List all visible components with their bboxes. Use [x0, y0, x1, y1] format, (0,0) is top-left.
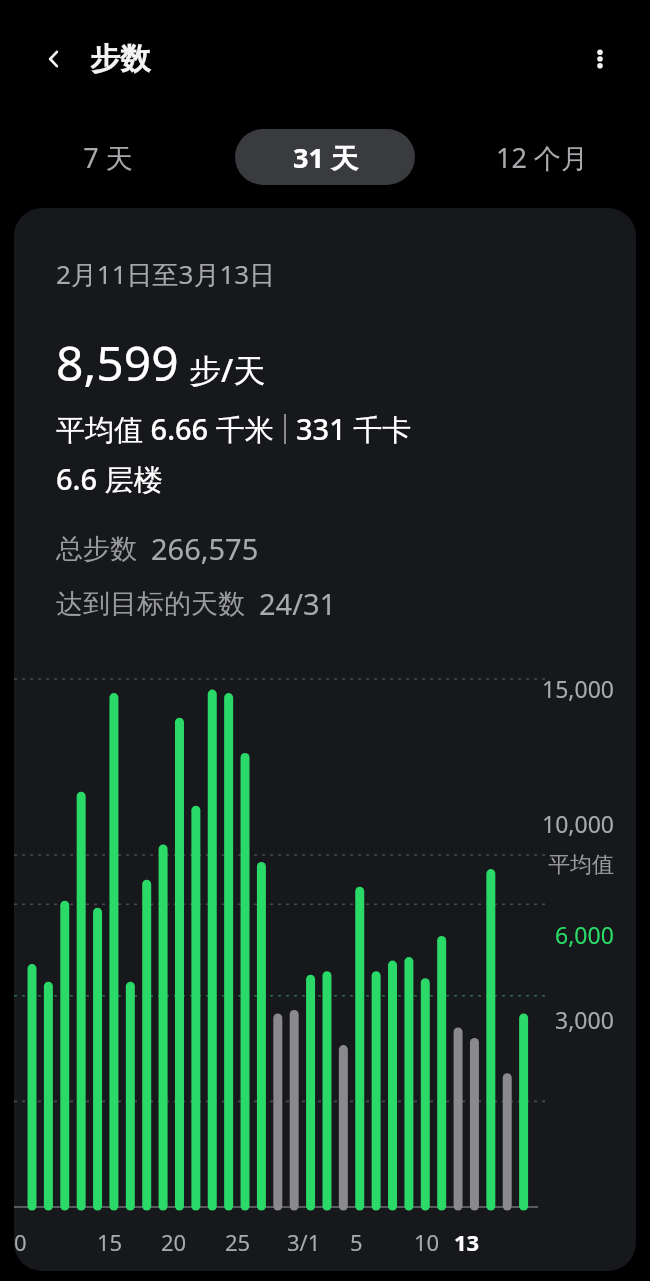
staticText: 总步数	[56, 532, 137, 566]
staticText: 达到目标的天数	[56, 587, 245, 621]
staticText: 20	[161, 1227, 187, 1257]
staticText: 7 天	[83, 139, 133, 176]
staticText: 10	[414, 1227, 440, 1257]
button[interactable]: More options	[576, 35, 624, 83]
staticText: 15,000	[542, 673, 614, 704]
staticText: 15	[97, 1227, 123, 1257]
button[interactable]: 2月11日至3月13日	[14, 208, 636, 1271]
staticText: 12 个月	[496, 139, 588, 176]
staticText: 25	[225, 1227, 251, 1257]
staticText: 3,000	[555, 1004, 614, 1035]
button[interactable]: 7 天	[18, 129, 198, 185]
staticText: 6,000	[555, 919, 614, 950]
staticText: 平均值 6.66 千米	[56, 409, 274, 449]
button[interactable]: 31 天	[235, 129, 415, 185]
staticText: 3/1	[287, 1227, 321, 1257]
staticText: 步数	[90, 40, 150, 78]
staticText: 24/31	[259, 584, 337, 623]
staticText: 331 千卡	[296, 409, 412, 449]
staticText: 步/天	[189, 348, 266, 392]
staticText: 0	[14, 1227, 27, 1257]
staticText: 6.6 层楼	[56, 459, 163, 499]
button[interactable]: Back	[30, 35, 78, 83]
staticText: 2月11日至3月13日	[56, 256, 276, 292]
staticText: 266,575	[151, 529, 259, 568]
staticText: 8,599	[56, 330, 179, 395]
staticText: 5	[350, 1227, 363, 1257]
staticText: 10,000	[542, 808, 614, 839]
button[interactable]: 12 个月	[452, 129, 632, 185]
staticText: 平均值	[548, 851, 614, 879]
staticText: 31 天	[293, 139, 358, 176]
staticText: 13	[454, 1227, 480, 1257]
